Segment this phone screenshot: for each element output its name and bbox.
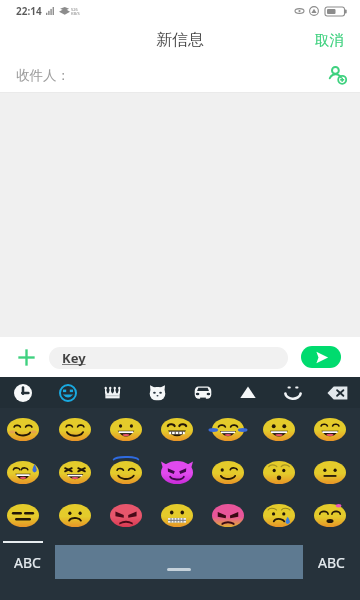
button[interactable]: Emoji 12: [253, 451, 304, 494]
button[interactable]: ABC: [303, 545, 360, 579]
button[interactable]: Backspace: [315, 377, 360, 408]
staticText: 取消: [315, 31, 344, 49]
button[interactable]: Emoji 17: [151, 494, 202, 537]
button[interactable]: Key: [49, 347, 288, 369]
button[interactable]: Send: [301, 346, 341, 368]
staticText: 526 KB/S: [71, 7, 80, 16]
button[interactable]: Emoji 0: [0, 408, 49, 451]
button[interactable]: Add recipient: [324, 62, 350, 88]
button[interactable]: Emoji 5: [253, 408, 304, 451]
button[interactable]: Emoji 11: [202, 451, 253, 494]
button[interactable]: Faces: [270, 377, 315, 408]
button[interactable]: Symbols: [225, 377, 270, 408]
button[interactable]: Add attachment: [8, 339, 44, 375]
staticText: ABC: [318, 553, 345, 572]
button[interactable]: Smileys: [45, 377, 90, 408]
button[interactable]: Emoji 16: [100, 494, 151, 537]
button[interactable]: Emoji 20: [304, 494, 355, 537]
staticText: Key: [62, 349, 86, 367]
staticText: 收件人：: [16, 67, 70, 84]
button[interactable]: Emoji 4: [202, 408, 253, 451]
button[interactable]: ABC: [0, 545, 55, 579]
button[interactable]: Emoji 18: [202, 494, 253, 537]
staticText: 新信息: [156, 30, 204, 50]
button[interactable]: Emoji 14: [0, 494, 49, 537]
button[interactable]: Emoji 1: [49, 408, 100, 451]
button[interactable]: Emoji 19: [253, 494, 304, 537]
button[interactable]: Emoji 2: [100, 408, 151, 451]
staticText: 22:14: [16, 4, 42, 18]
button[interactable]: Space: [55, 545, 303, 579]
button[interactable]: Animals: [135, 377, 180, 408]
button[interactable]: Emoji 8: [49, 451, 100, 494]
button[interactable]: Emoji 3: [151, 408, 202, 451]
button[interactable]: Emoji 15: [49, 494, 100, 537]
button[interactable]: Travel: [180, 377, 225, 408]
button[interactable]: Emoji 13: [304, 451, 355, 494]
staticText: ABC: [14, 553, 41, 572]
button[interactable]: Emoji 10: [151, 451, 202, 494]
button[interactable]: Crown: [90, 377, 135, 408]
button[interactable]: 取消: [301, 25, 360, 55]
button[interactable]: Emoji 9: [100, 451, 151, 494]
button[interactable]: Emoji 6: [304, 408, 355, 451]
button[interactable]: Recent: [0, 377, 45, 408]
button[interactable]: Emoji 7: [0, 451, 49, 494]
